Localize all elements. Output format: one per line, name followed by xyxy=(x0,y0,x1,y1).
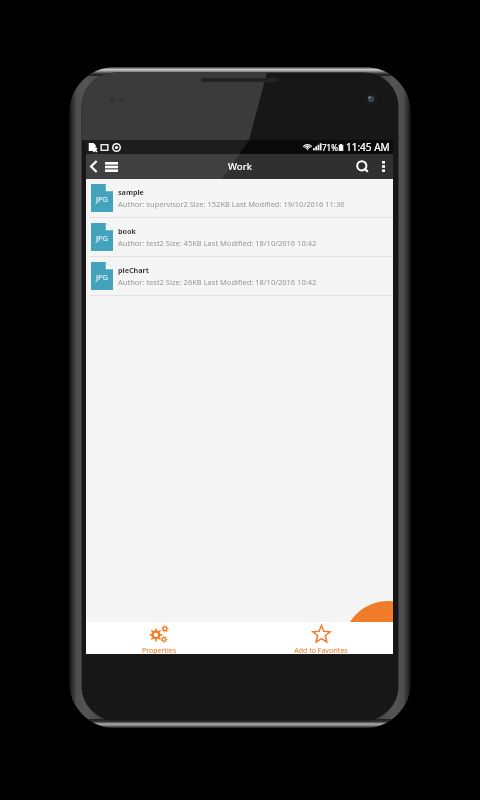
button[interactable]: Add xyxy=(343,601,393,622)
staticText: JPG xyxy=(96,233,109,243)
staticText: pieChart xyxy=(118,265,149,275)
staticText: Author: supervisor2 Size: 152KB Last Mod… xyxy=(118,199,345,209)
staticText: 11:45 AM xyxy=(346,140,390,154)
button[interactable]: Menu xyxy=(101,154,121,179)
staticText: Add to Favorites xyxy=(294,646,348,654)
staticText: JPG xyxy=(96,194,109,204)
staticText: JPG xyxy=(96,272,109,282)
staticText: Properties xyxy=(142,646,176,654)
staticText: book xyxy=(118,226,136,236)
button[interactable]: More options xyxy=(373,154,393,179)
staticText: 71% xyxy=(322,142,338,153)
button[interactable]: Search xyxy=(351,154,373,179)
button[interactable]: Add to Favorites xyxy=(271,622,371,654)
staticText: sample xyxy=(118,187,144,197)
staticText: Author: test2 Size: 26KB Last Modified: … xyxy=(118,277,317,287)
button[interactable]: Properties xyxy=(109,622,209,654)
button[interactable]: JPG xyxy=(86,218,393,257)
button[interactable]: JPG xyxy=(86,257,393,296)
staticText: Work xyxy=(228,160,252,173)
button[interactable]: JPG xyxy=(86,179,393,218)
staticText: Author: test2 Size: 45KB Last Modified: … xyxy=(118,238,317,248)
button[interactable]: Back xyxy=(86,154,101,179)
